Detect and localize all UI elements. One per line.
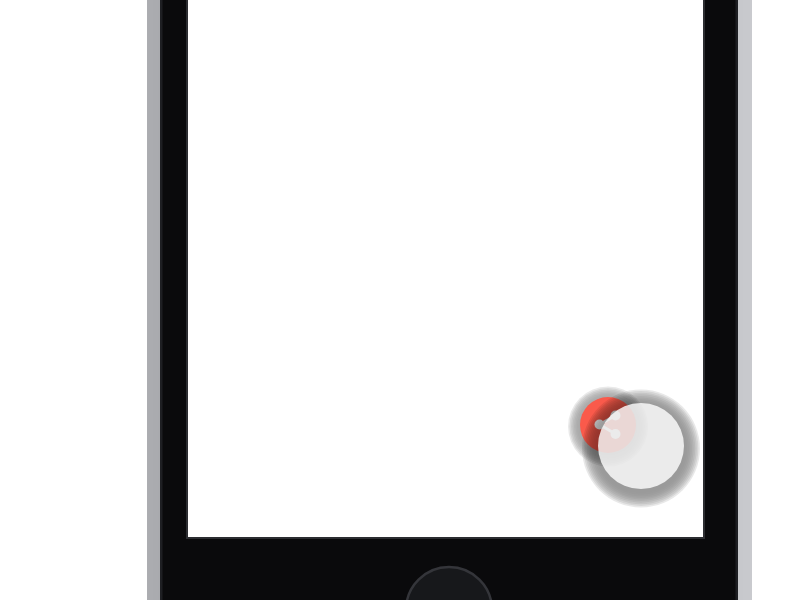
button[interactable]: Share <box>580 397 636 453</box>
